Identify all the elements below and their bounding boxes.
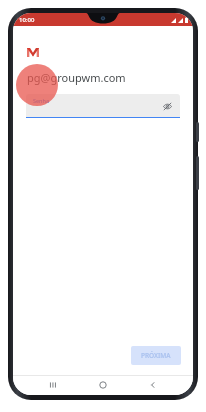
button[interactable]: Senha xyxy=(26,94,180,118)
staticText: Senha xyxy=(33,97,50,104)
button[interactable]: Voltar xyxy=(143,375,163,395)
staticText: 10:00 xyxy=(19,16,35,24)
button[interactable]: Início xyxy=(93,375,113,395)
button[interactable]: Mostrar senha xyxy=(161,100,174,113)
button[interactable]: PRÓXIMA xyxy=(131,346,181,365)
staticText: PRÓXIMA xyxy=(141,351,171,360)
staticText: pg@groupwm.com xyxy=(27,70,126,85)
button[interactable]: Recentes xyxy=(43,375,63,395)
